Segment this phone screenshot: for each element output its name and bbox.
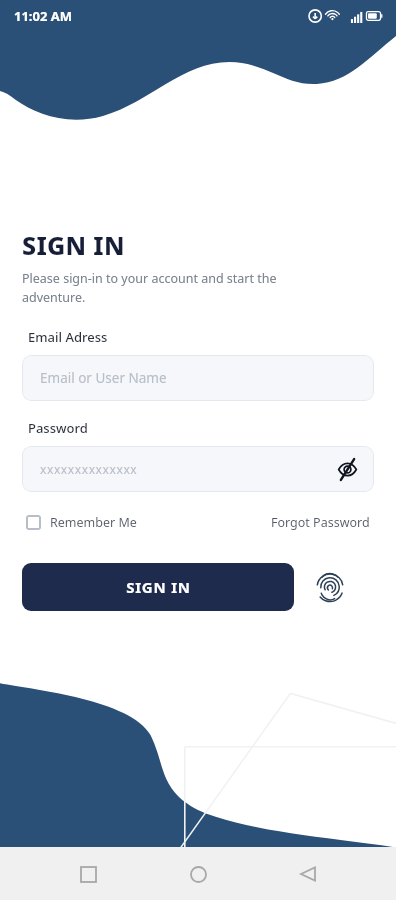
button[interactable]: Back <box>286 852 330 896</box>
button[interactable]: Remember Me <box>22 510 141 535</box>
staticText: 11:02 AM <box>14 7 73 25</box>
button[interactable]: Sign in with fingerprint <box>304 561 356 613</box>
staticText: Please sign-in to your account and start… <box>22 270 277 306</box>
staticText: Remember Me <box>50 514 137 531</box>
staticText: xxxxxxxxxxxxxx <box>40 461 138 477</box>
button[interactable]: xxxxxxxxxxxxxx <box>22 446 374 492</box>
button[interactable]: Email or User Name <box>22 355 374 401</box>
button[interactable]: Recent apps <box>66 852 110 896</box>
staticText: Forgot Password <box>271 514 370 531</box>
staticText: Email Adress <box>28 328 108 346</box>
staticText: SIGN IN <box>126 577 191 597</box>
button[interactable]: Home <box>176 852 220 896</box>
button[interactable]: Forgot Password <box>267 510 374 535</box>
staticText: Email or User Name <box>40 369 167 387</box>
staticText: Password <box>28 419 88 437</box>
staticText: SIGN IN <box>22 228 125 262</box>
button[interactable]: SIGN IN <box>22 563 294 611</box>
button[interactable]: Show password <box>332 454 362 484</box>
